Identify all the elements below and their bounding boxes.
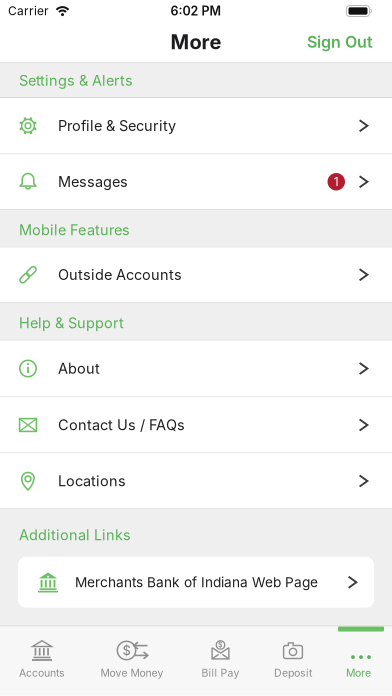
button[interactable]: Messages (0, 154, 392, 209)
staticText: Merchants Bank of Indiana Web Page (75, 574, 318, 591)
staticText: Settings & Alerts (19, 72, 133, 89)
button[interactable]: Profile & Security (0, 98, 392, 153)
button[interactable]: About (0, 340, 392, 396)
button[interactable]: Contact Us / FAQs (0, 397, 392, 452)
staticText: Bill Pay (201, 666, 239, 679)
button[interactable]: Sign Out (307, 32, 392, 52)
staticText: $ (218, 641, 223, 649)
staticText: $ (122, 643, 130, 658)
staticText: Locations (58, 472, 126, 490)
button[interactable]: Outside Accounts (0, 247, 392, 302)
staticText: Sign Out (307, 32, 373, 52)
staticText: More (170, 30, 221, 54)
button[interactable]: $ (180, 626, 261, 695)
staticText: Contact Us / FAQs (58, 416, 185, 434)
staticText: Deposit (274, 666, 312, 679)
staticText: Additional Links (19, 526, 131, 544)
staticText: Carrier (8, 4, 49, 18)
staticText: Outside Accounts (58, 266, 182, 284)
button[interactable]: More (325, 626, 392, 695)
staticText: More (346, 666, 371, 679)
staticText: Help & Support (19, 314, 124, 332)
staticText: Move Money (100, 666, 163, 679)
button[interactable]: Accounts (0, 626, 84, 695)
button[interactable]: Deposit (261, 626, 325, 695)
button[interactable]: $ (84, 626, 180, 695)
staticText: 6:02 PM (170, 3, 221, 18)
staticText: 1 (334, 174, 339, 189)
button[interactable]: Locations (0, 453, 392, 508)
staticText: Mobile Features (19, 221, 130, 239)
staticText: Profile & Security (58, 117, 176, 135)
button[interactable]: Merchants Bank of Indiana Web Page (18, 557, 374, 608)
staticText: Accounts (19, 666, 65, 679)
staticText: Messages (58, 173, 128, 191)
staticText: About (58, 360, 100, 377)
